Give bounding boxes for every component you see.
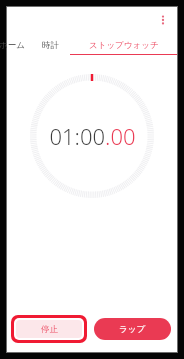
- button[interactable]: ストップウォッチ: [70, 33, 177, 57]
- button[interactable]: ラップ: [94, 318, 171, 340]
- button[interactable]: ホーム: [0, 33, 25, 57]
- button[interactable]: 停止: [16, 320, 82, 338]
- staticText: ストップウォッチ: [89, 40, 159, 51]
- staticText: 時計: [42, 40, 59, 51]
- button[interactable]: 時計: [42, 33, 59, 57]
- staticText: ラップ: [119, 324, 146, 335]
- staticText: 01:00.00: [49, 121, 136, 151]
- button[interactable]: More options: [153, 10, 173, 30]
- staticText: ホーム: [0, 40, 25, 51]
- staticText: 停止: [41, 324, 58, 335]
